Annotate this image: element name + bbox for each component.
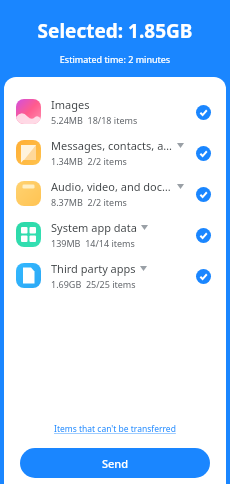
staticText: 1.69GB 25/25 items [51,278,136,290]
button[interactable]: Selected Audio, video, and documents [190,181,216,207]
button[interactable]: Selected System app data [190,222,216,248]
button[interactable]: Messages, contacts, and c… [4,132,226,173]
button[interactable]: Selected Messages, contacts, and c… [190,140,216,166]
button[interactable]: Selected Images [190,99,216,125]
button[interactable]: Items that can't be transferred [48,420,182,438]
staticText: Images [51,97,90,112]
staticText: Selected: 1.85GB [0,18,230,44]
button[interactable]: Audio, video, and documents [4,173,226,214]
staticText: Messages, contacts, and c… [51,138,173,153]
staticText: System app data [51,220,137,235]
staticText: Audio, video, and documents [51,179,173,194]
button[interactable]: Images [4,91,226,132]
staticText: Send [102,456,129,471]
staticText: 5.24MB 18/18 items [51,114,138,126]
staticText: 139MB 14/14 items [51,237,135,249]
staticText: Items that can't be transferred [54,423,176,435]
staticText: Third party apps [51,261,136,276]
staticText: 1.34MB 2/2 items [51,155,127,167]
button[interactable]: System app data [4,214,226,255]
button[interactable]: Third party apps [4,255,226,296]
button[interactable]: Send [20,448,210,478]
button[interactable]: Selected Third party apps [190,263,216,289]
staticText: 8.37MB 2/2 items [51,196,127,208]
staticText: Estimated time: 2 minutes [0,53,230,65]
